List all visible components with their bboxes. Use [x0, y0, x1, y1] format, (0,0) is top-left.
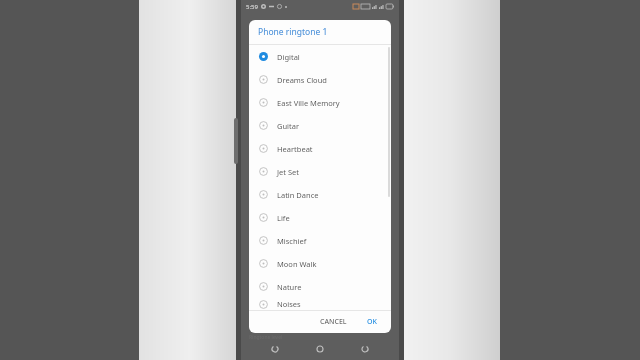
staticText: Dreams Cloud: [277, 75, 327, 85]
staticText: Life: [277, 213, 290, 223]
button[interactable]: Moon Walk: [249, 252, 391, 275]
button[interactable]: OK: [361, 314, 383, 330]
staticText: Mischief: [277, 236, 307, 246]
button[interactable]: Home: [309, 338, 331, 360]
button[interactable]: Noises: [249, 298, 391, 310]
staticText: Jet Set: [277, 167, 299, 177]
button[interactable]: Jet Set: [249, 160, 391, 183]
staticText: Heartbeat: [277, 144, 313, 154]
button[interactable]: Mischief: [249, 229, 391, 252]
button[interactable]: Digital: [249, 45, 391, 68]
staticText: 5:59: [246, 3, 258, 11]
staticText: Phone ringtone 1: [258, 26, 328, 38]
button[interactable]: CANCEL: [314, 314, 353, 330]
button[interactable]: Heartbeat: [249, 137, 391, 160]
button[interactable]: Latin Dance: [249, 183, 391, 206]
staticText: CANCEL: [320, 317, 347, 327]
button[interactable]: Guitar: [249, 114, 391, 137]
button[interactable]: Dreams Cloud: [249, 68, 391, 91]
staticText: Latin Dance: [277, 190, 319, 200]
button[interactable]: Recent apps: [354, 338, 376, 360]
staticText: Nature: [277, 282, 302, 292]
staticText: East Ville Memory: [277, 98, 340, 108]
button[interactable]: Life: [249, 206, 391, 229]
button[interactable]: East Ville Memory: [249, 91, 391, 114]
button[interactable]: Back: [264, 338, 286, 360]
staticText: Moon Walk: [277, 259, 317, 269]
staticText: Noises: [277, 299, 301, 309]
staticText: OK: [367, 317, 377, 327]
button[interactable]: Nature: [249, 275, 391, 298]
staticText: Guitar: [277, 121, 300, 131]
staticText: Digital: [277, 52, 300, 62]
